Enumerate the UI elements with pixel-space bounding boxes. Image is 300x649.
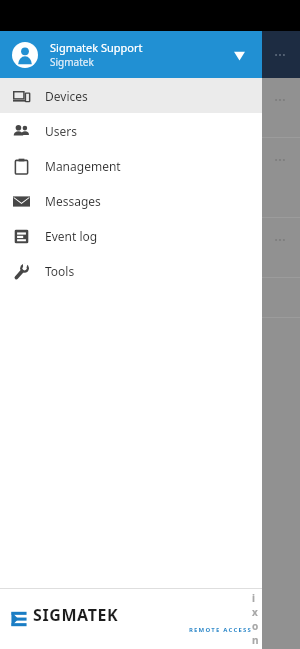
staticText: Sigmatek Support xyxy=(50,40,143,55)
staticText: Sigmatek xyxy=(50,55,94,69)
button[interactable]: Tools xyxy=(0,253,262,288)
staticText: Devices xyxy=(45,88,88,104)
staticText: SIGMATEK xyxy=(33,604,119,626)
staticText: REMOTE ACCESS xyxy=(33,626,252,634)
staticText: Messages xyxy=(45,193,101,209)
button[interactable]: Devices xyxy=(0,78,262,113)
staticText: Tools xyxy=(45,263,75,279)
button[interactable]: Sigmatek Support xyxy=(0,31,262,78)
staticText: Users xyxy=(45,123,77,139)
staticText: Management xyxy=(45,158,121,174)
button[interactable]: Event log xyxy=(0,218,262,253)
staticText: Event log xyxy=(45,228,98,244)
button[interactable]: More options xyxy=(266,41,294,69)
button[interactable]: Management xyxy=(0,148,262,183)
button[interactable]: Switch account xyxy=(228,44,250,66)
button[interactable]: Messages xyxy=(0,183,262,218)
button[interactable]: Users xyxy=(0,113,262,148)
